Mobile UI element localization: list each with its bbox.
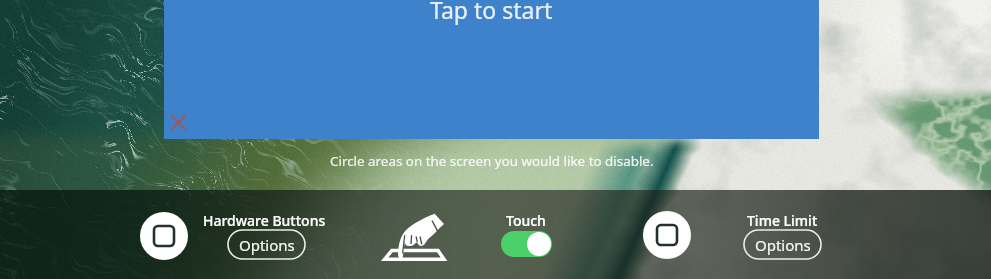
- staticText: Time Limit: [747, 211, 818, 230]
- button[interactable]: Options: [744, 230, 821, 259]
- staticText: Touch: [506, 211, 546, 230]
- staticText: Options: [239, 235, 295, 255]
- staticText: Tap to start: [430, 0, 553, 25]
- button[interactable]: Tap to start: [164, 0, 819, 139]
- button[interactable]: Time limit: [643, 211, 691, 259]
- staticText: Hardware Buttons: [203, 211, 326, 230]
- button[interactable]: Options: [228, 230, 305, 259]
- button[interactable]: Touch gesture: [384, 213, 444, 260]
- staticText: Circle areas on the screen you would lik…: [330, 152, 654, 170]
- staticText: Options: [755, 235, 811, 255]
- button[interactable]: Hardware buttons: [140, 212, 188, 260]
- button[interactable]: Touch toggle: [501, 231, 552, 257]
